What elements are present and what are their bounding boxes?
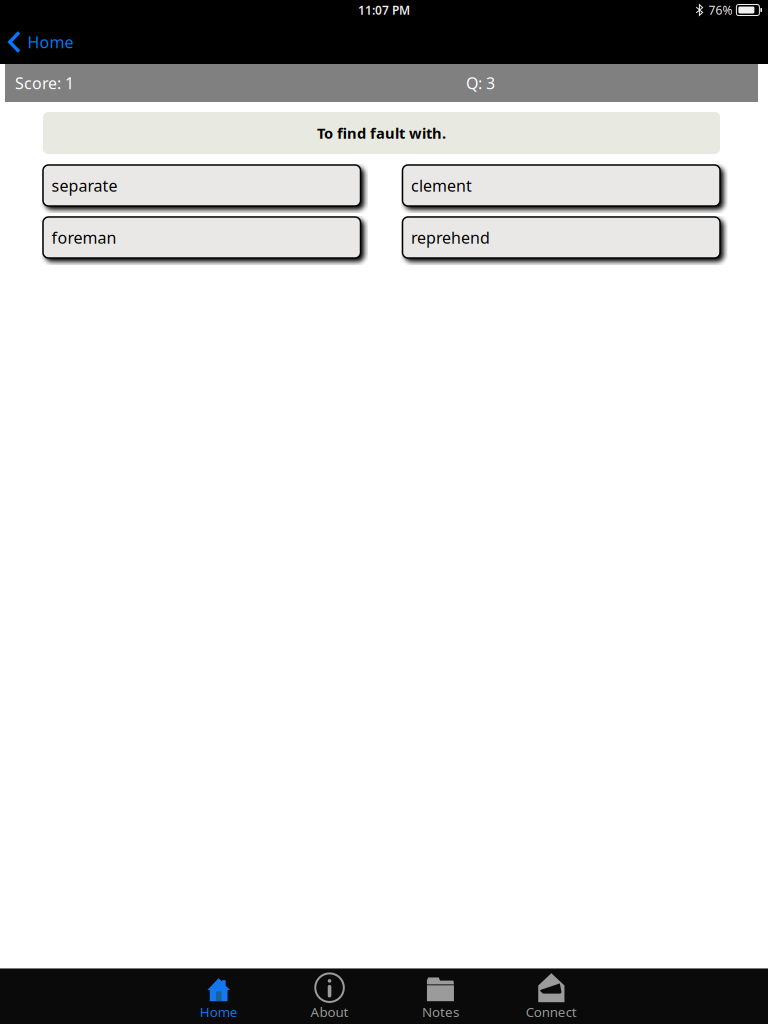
staticText: Notes <box>422 1003 459 1021</box>
staticText: separate <box>51 175 117 196</box>
staticText: clement <box>411 175 472 196</box>
button[interactable]: reprehend <box>402 217 720 258</box>
staticText: Score: 1 <box>15 72 74 94</box>
button[interactable]: About <box>284 968 376 1024</box>
button[interactable]: foreman <box>43 217 360 258</box>
button[interactable]: clement <box>402 165 720 206</box>
button[interactable]: Connect <box>505 968 597 1024</box>
staticText: About <box>311 1003 349 1021</box>
staticText: Q: 3 <box>466 72 495 94</box>
staticText: Home <box>200 1003 238 1021</box>
staticText: Connect <box>526 1003 577 1021</box>
staticText: 76% <box>708 2 732 18</box>
staticText: To find fault with. <box>317 123 446 143</box>
staticText: reprehend <box>411 227 490 248</box>
button[interactable]: Back to Home <box>0 20 84 64</box>
staticText: foreman <box>51 227 116 248</box>
staticText: Home <box>28 31 74 53</box>
button[interactable]: separate <box>43 165 360 206</box>
button[interactable]: Home <box>173 968 265 1024</box>
button[interactable]: Notes <box>394 968 486 1024</box>
staticText: 11:07 PM <box>358 2 410 18</box>
